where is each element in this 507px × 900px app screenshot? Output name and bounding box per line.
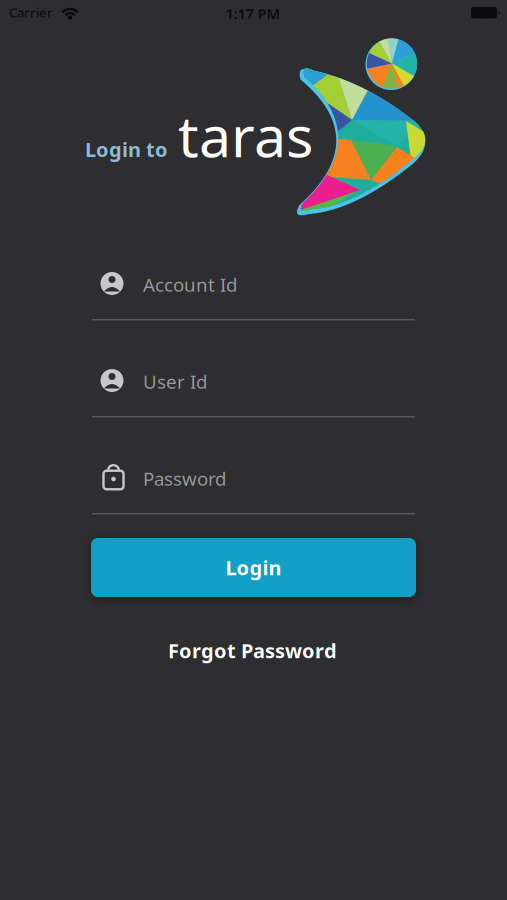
staticText: 1:17 PM — [225, 4, 280, 23]
staticText: Login to — [85, 136, 168, 163]
staticText: Account Id — [143, 272, 237, 297]
button[interactable]: User Id — [92, 351, 415, 417]
button[interactable]: Account Id — [92, 254, 415, 320]
staticText: Password — [143, 466, 226, 491]
staticText: User Id — [143, 369, 207, 394]
staticText: Login — [225, 554, 281, 581]
button[interactable]: Login — [91, 538, 416, 597]
button[interactable]: Forgot Password — [168, 637, 337, 664]
button[interactable]: Password — [92, 448, 415, 514]
staticText: taras — [178, 97, 313, 173]
staticText: Forgot Password — [168, 637, 337, 664]
staticText: Carrier — [9, 3, 53, 21]
